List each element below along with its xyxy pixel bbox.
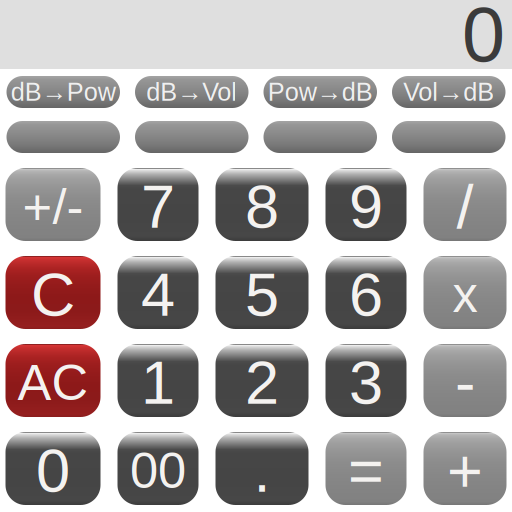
- button[interactable]: 9: [325, 168, 406, 241]
- staticText: .: [253, 436, 270, 505]
- button[interactable]: +/-: [5, 168, 100, 241]
- button[interactable]: AC: [5, 344, 100, 417]
- staticText: x: [452, 266, 477, 323]
- staticText: 6: [349, 260, 383, 329]
- staticText: Pow→dB: [268, 78, 373, 106]
- button[interactable]: /: [423, 168, 506, 241]
- staticText: Vol→dB: [403, 78, 494, 106]
- staticText: 0: [462, 0, 505, 78]
- staticText: C: [31, 260, 75, 329]
- staticText: 1: [141, 348, 175, 417]
- button[interactable]: dB→Pow: [6, 76, 120, 108]
- button[interactable]: [263, 121, 377, 153]
- button[interactable]: 7: [117, 168, 198, 241]
- button[interactable]: =: [325, 432, 406, 505]
- button[interactable]: [392, 121, 505, 153]
- button[interactable]: 8: [215, 168, 308, 241]
- staticText: /: [456, 172, 473, 241]
- button[interactable]: C: [5, 256, 100, 329]
- staticText: 5: [245, 260, 279, 329]
- button[interactable]: +: [423, 432, 506, 505]
- staticText: +: [447, 436, 483, 505]
- button[interactable]: -: [423, 344, 506, 417]
- button[interactable]: x: [423, 256, 506, 329]
- button[interactable]: dB→Vol: [135, 76, 248, 108]
- staticText: dB→Vol: [146, 78, 237, 106]
- button[interactable]: 6: [325, 256, 406, 329]
- button[interactable]: 5: [215, 256, 308, 329]
- staticText: =: [348, 436, 384, 505]
- staticText: -: [455, 348, 475, 417]
- staticText: dB→Pow: [11, 78, 116, 106]
- staticText: 00: [130, 442, 186, 499]
- staticText: 7: [141, 172, 175, 241]
- button[interactable]: 00: [117, 432, 198, 505]
- staticText: 3: [349, 348, 383, 417]
- staticText: 8: [245, 172, 279, 241]
- button[interactable]: 3: [325, 344, 406, 417]
- staticText: 4: [141, 260, 175, 329]
- staticText: 9: [349, 172, 383, 241]
- button[interactable]: 4: [117, 256, 198, 329]
- button[interactable]: [6, 121, 120, 153]
- staticText: AC: [17, 354, 88, 411]
- button[interactable]: 2: [215, 344, 308, 417]
- staticText: 2: [245, 348, 279, 417]
- staticText: 0: [36, 436, 70, 505]
- button[interactable]: 0: [5, 432, 100, 505]
- button[interactable]: 1: [117, 344, 198, 417]
- button[interactable]: .: [215, 432, 308, 505]
- button[interactable]: [135, 121, 248, 153]
- button[interactable]: Vol→dB: [392, 76, 505, 108]
- staticText: +/-: [22, 178, 83, 235]
- button[interactable]: Pow→dB: [263, 76, 377, 108]
